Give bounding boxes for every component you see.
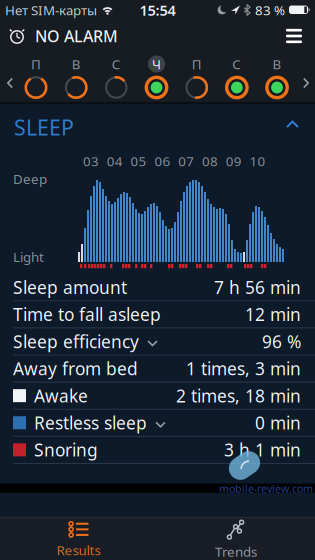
- staticText: Ч: [152, 55, 161, 73]
- button[interactable]: П: [19, 54, 53, 101]
- staticText: П: [192, 55, 202, 73]
- staticText: В: [272, 55, 281, 73]
- staticText: 1 times, 3 min: [186, 357, 301, 380]
- button[interactable]: П: [180, 54, 214, 101]
- button[interactable]: Snoring: [0, 437, 315, 463]
- button[interactable]: Results: [0, 517, 157, 560]
- staticText: Restless sleep: [34, 411, 147, 434]
- staticText: П: [31, 55, 41, 73]
- staticText: Awake: [34, 384, 88, 407]
- staticText: 06: [154, 152, 170, 170]
- staticText: С: [112, 55, 121, 73]
- staticText: В: [72, 55, 81, 73]
- staticText: 05: [131, 152, 147, 170]
- button[interactable]: Trends: [157, 517, 315, 560]
- staticText: 08: [202, 152, 218, 170]
- staticText: 0 min: [255, 411, 301, 434]
- staticText: 12 min: [245, 303, 301, 326]
- button[interactable]: С: [99, 54, 133, 101]
- staticText: Нет SIM-карты: [5, 1, 97, 19]
- button[interactable]: [279, 20, 309, 52]
- button[interactable]: SLEEP: [0, 104, 315, 143]
- staticText: 15:54: [139, 0, 175, 20]
- staticText: 10: [250, 152, 266, 170]
- staticText: 2 times, 18 min: [176, 384, 301, 407]
- staticText: Sleep efficiency: [13, 330, 139, 353]
- staticText: 03: [83, 152, 99, 170]
- button[interactable]: Ч: [139, 54, 173, 101]
- button[interactable]: Awake: [0, 382, 315, 409]
- staticText: Time to fall asleep: [13, 303, 161, 326]
- button[interactable]: Sleep amount: [0, 274, 315, 300]
- button[interactable]: [298, 73, 314, 93]
- staticText: 7 h 56 min: [214, 276, 301, 299]
- staticText: Trends: [215, 543, 257, 560]
- button[interactable]: Away from bed: [0, 355, 315, 382]
- staticText: mobile-review.com: [219, 481, 313, 496]
- staticText: 07: [178, 152, 194, 170]
- button[interactable]: Sleep efficiency: [0, 328, 315, 354]
- staticText: Away from bed: [13, 357, 138, 380]
- staticText: 04: [107, 152, 123, 170]
- staticText: Results: [56, 541, 100, 559]
- staticText: Sleep amount: [13, 276, 127, 299]
- button[interactable]: NO ALARM: [9, 20, 169, 52]
- button[interactable]: В: [260, 54, 294, 101]
- button[interactable]: Restless sleep: [0, 410, 315, 436]
- staticText: Light: [13, 248, 44, 266]
- staticText: SLEEP: [14, 113, 74, 141]
- button[interactable]: Time to fall asleep: [0, 301, 315, 327]
- staticText: Deep: [13, 170, 47, 188]
- button[interactable]: [2, 73, 18, 93]
- staticText: NO ALARM: [35, 25, 118, 47]
- staticText: С: [232, 55, 241, 73]
- staticText: Snoring: [34, 438, 98, 461]
- staticText: 3 h 1 min: [224, 438, 301, 461]
- staticText: 09: [226, 152, 242, 170]
- staticText: 96 %: [262, 330, 301, 353]
- staticText: 83 %: [255, 1, 285, 19]
- button[interactable]: С: [220, 54, 254, 101]
- button[interactable]: В: [59, 54, 93, 101]
